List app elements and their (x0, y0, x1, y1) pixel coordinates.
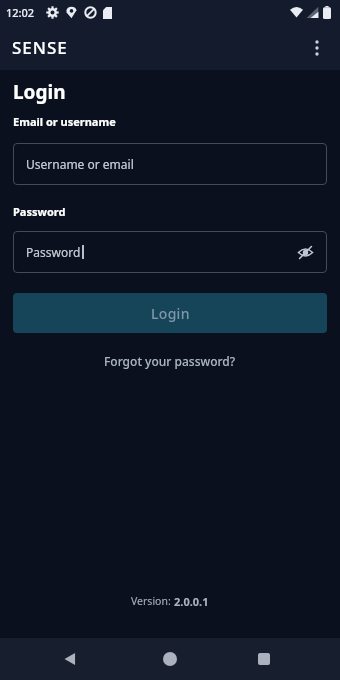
staticText: 12:02 (6, 5, 35, 20)
button[interactable] (140, 638, 200, 680)
staticText: Version: (131, 594, 174, 608)
staticText: Login (13, 79, 66, 105)
staticText: Username or email (26, 156, 134, 172)
button[interactable]: Username or email (13, 143, 327, 185)
button[interactable]: Login (13, 293, 327, 333)
staticText: SENSE (12, 36, 68, 59)
staticText: Password (26, 244, 81, 260)
button[interactable] (234, 638, 294, 680)
button[interactable] (40, 638, 100, 680)
staticText: 2.0.0.1 (174, 594, 209, 609)
button[interactable]: Forgot your password? (104, 353, 236, 369)
button[interactable] (304, 35, 330, 61)
button[interactable]: Password (13, 231, 327, 273)
staticText: Email or username (13, 114, 116, 129)
staticText: Password (13, 204, 66, 219)
staticText: Login (151, 304, 190, 323)
